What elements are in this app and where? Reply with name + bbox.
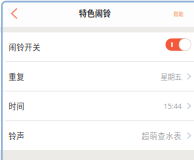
staticText: 重复: [9, 71, 25, 82]
staticText: 15:44: [163, 101, 181, 111]
staticText: 铃声: [9, 130, 25, 141]
button[interactable]: 帮助: [163, 0, 194, 27]
button[interactable]: 返回: [0, 0, 28, 27]
staticText: 时间: [9, 100, 25, 112]
button[interactable]: 时间: [0, 92, 194, 120]
staticText: 超萌查水表: [141, 130, 181, 141]
staticText: 星期五: [160, 71, 181, 82]
button[interactable]: 重复: [0, 62, 194, 91]
button[interactable]: 闹铃开关: [0, 32, 194, 61]
staticText: 帮助: [173, 10, 183, 17]
button[interactable]: 铃声: [0, 121, 194, 150]
staticText: 特色闹铃: [79, 7, 111, 19]
staticText: 闹铃开关: [9, 41, 41, 52]
